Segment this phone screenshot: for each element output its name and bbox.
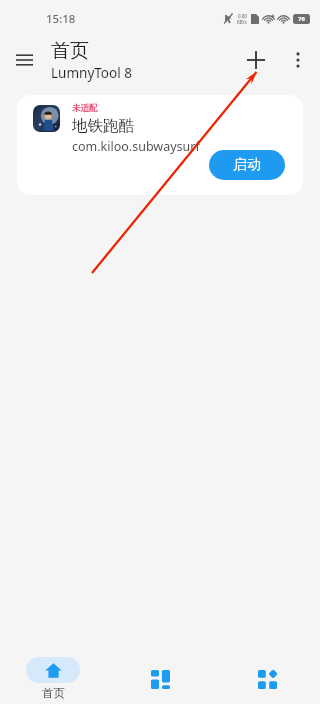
button[interactable]: More options [278,40,318,80]
staticText: 76 [298,15,305,23]
staticText: 首页 [42,686,65,700]
staticText: 首页 [51,39,89,63]
staticText: 未适配 [72,103,98,114]
staticText: LumnyTool 8 [51,64,132,82]
button[interactable]: Tools [245,657,289,701]
button[interactable]: Apps [138,657,182,701]
button[interactable]: 首页 [26,657,80,700]
staticText: 0.00 [238,13,247,19]
staticText: 启动 [233,156,261,174]
button[interactable]: Menu [6,42,42,78]
staticText: 15:18 [46,11,76,27]
staticText: 地铁跑酷 [72,116,134,136]
staticText: KB/s [237,19,247,25]
staticText: com.kiloo.subwaysurf [72,138,200,155]
button[interactable]: 未适配 [17,95,303,195]
button[interactable]: 启动 [209,150,285,180]
button[interactable]: Add [234,38,278,82]
